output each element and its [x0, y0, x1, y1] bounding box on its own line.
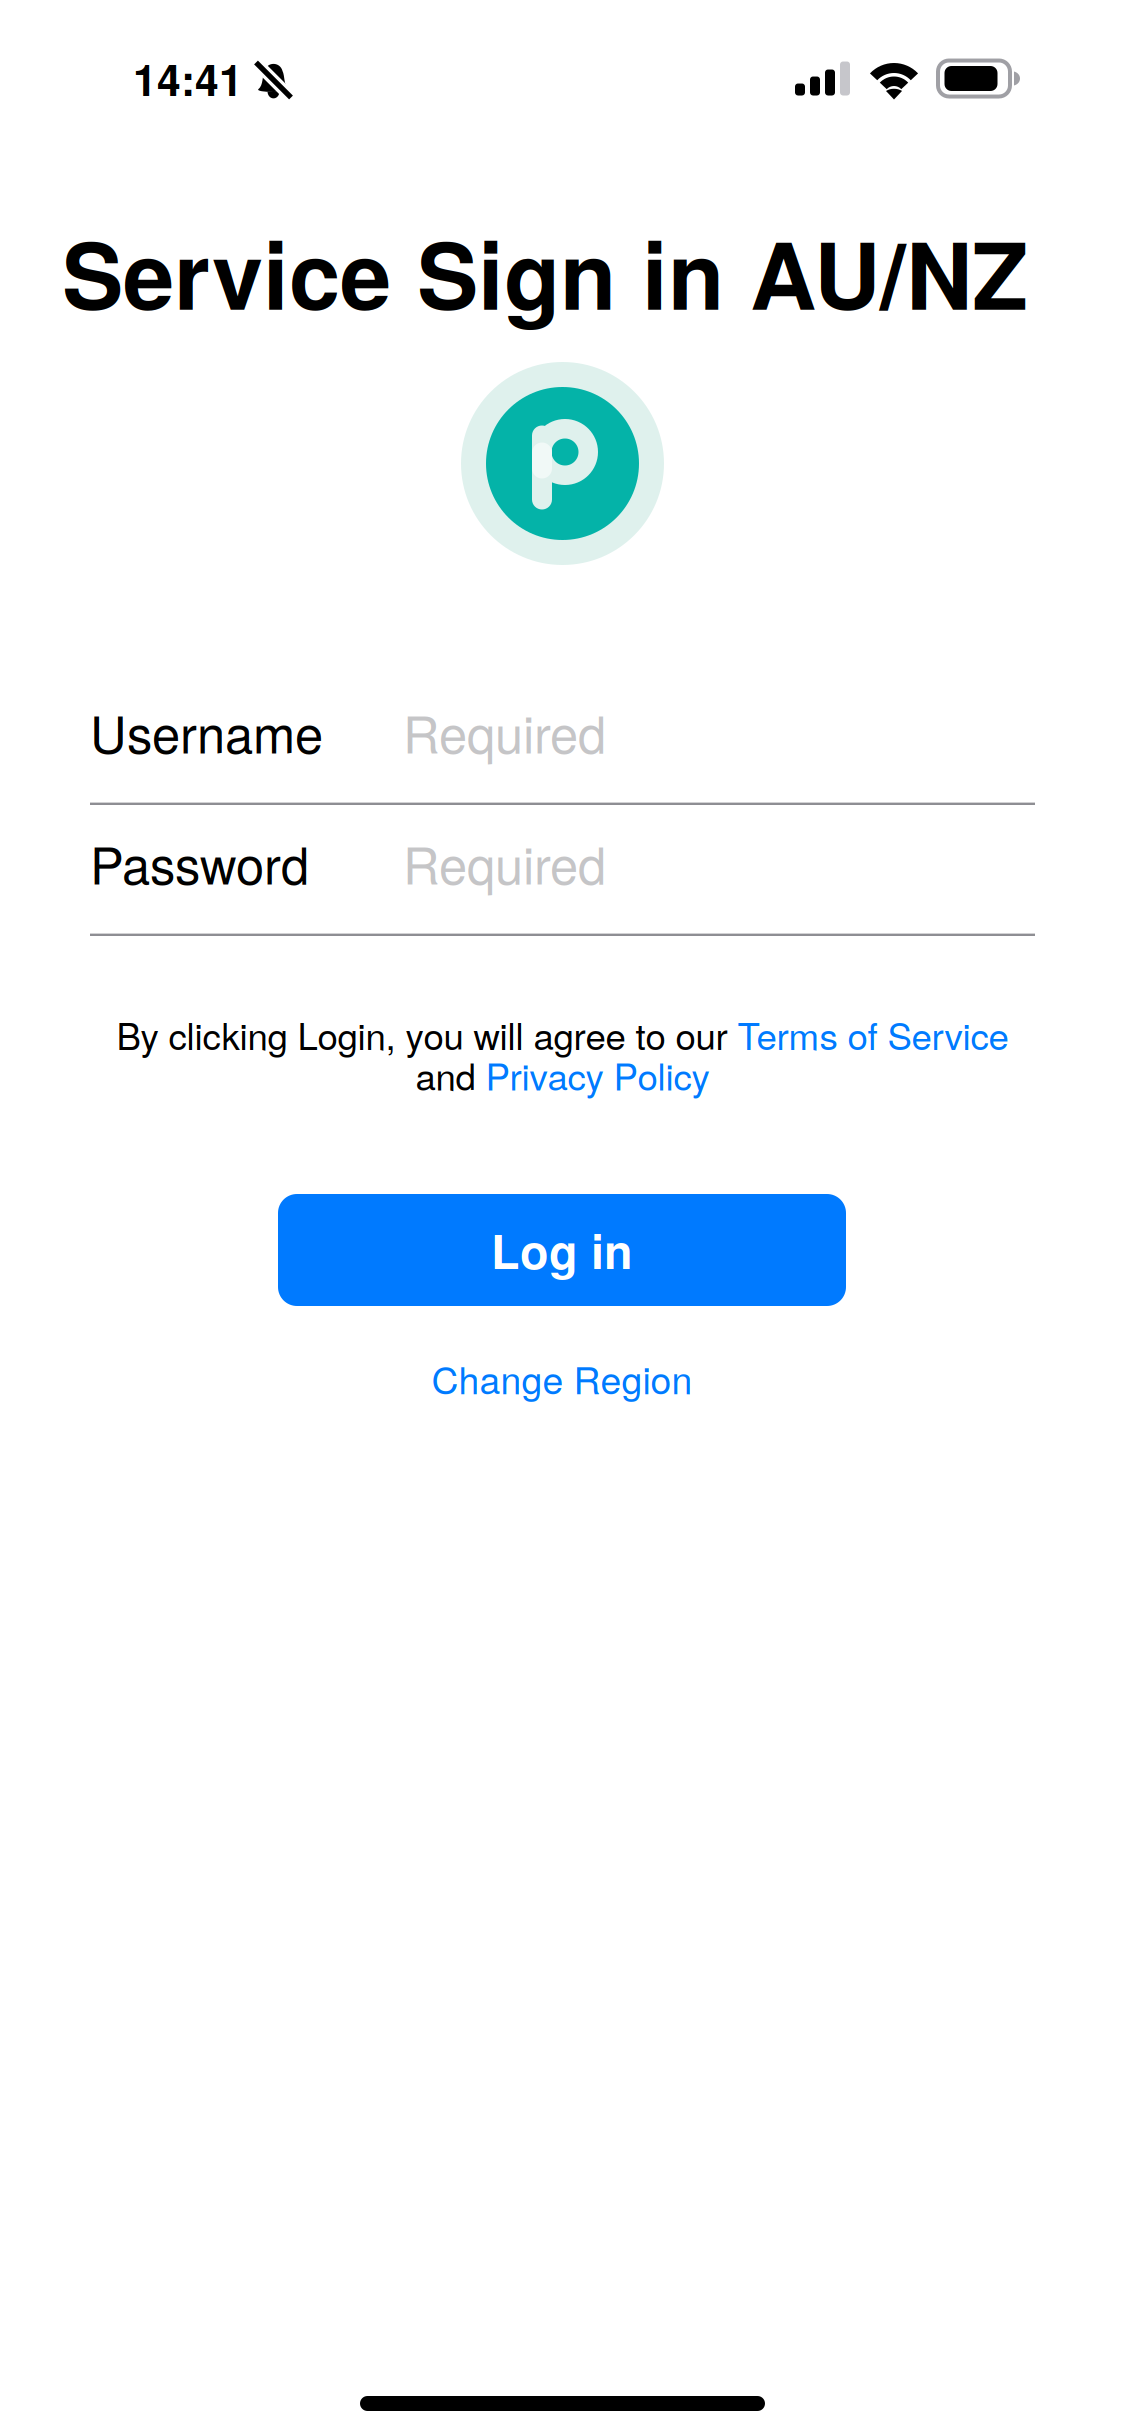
staticText: Password — [90, 826, 309, 899]
staticText: 14:41 — [133, 48, 243, 109]
staticText: Terms of Service — [737, 1008, 1008, 1060]
staticText: Required — [403, 826, 606, 899]
staticText: Required — [403, 695, 606, 768]
staticText: Service Sign in AU/NZ — [62, 206, 1028, 338]
button[interactable]: Terms of Service — [737, 1008, 1008, 1060]
staticText: Username — [90, 695, 323, 768]
staticText: Log in — [491, 1217, 633, 1283]
staticText: By clicking Login, you will agree to our — [116, 1008, 737, 1060]
staticText: Change Region — [431, 1351, 692, 1405]
button[interactable]: Log in — [278, 1194, 846, 1306]
button[interactable]: Change Region — [362, 1334, 762, 1422]
staticText: Privacy Policy — [485, 1048, 709, 1101]
button[interactable]: Privacy Policy — [485, 1048, 709, 1101]
staticText: and — [415, 1048, 485, 1101]
